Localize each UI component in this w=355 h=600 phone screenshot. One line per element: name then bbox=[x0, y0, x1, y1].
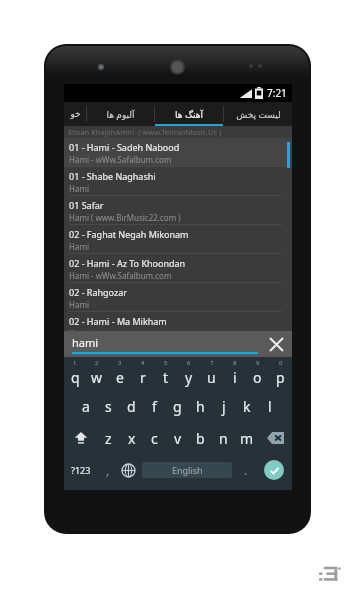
staticText: z bbox=[105, 429, 112, 448]
button[interactable]: f bbox=[143, 390, 166, 422]
button[interactable]: 5 bbox=[154, 359, 177, 390]
button[interactable]: 4 bbox=[131, 359, 154, 390]
button[interactable]: 2 bbox=[86, 359, 108, 390]
staticText: خو bbox=[70, 109, 81, 119]
staticText: r bbox=[140, 368, 146, 387]
button[interactable]: آلبوم ها bbox=[87, 102, 154, 126]
staticText: w bbox=[91, 368, 103, 387]
button[interactable]: , bbox=[97, 454, 118, 486]
staticText: 1 bbox=[73, 359, 77, 367]
staticText: 9 bbox=[256, 359, 260, 367]
button[interactable]: خو bbox=[64, 102, 86, 126]
staticText: i bbox=[233, 368, 237, 387]
staticText: g bbox=[173, 397, 182, 416]
staticText: Hami bbox=[69, 241, 89, 252]
button[interactable]: Clear search bbox=[266, 334, 286, 354]
button[interactable]: m bbox=[235, 422, 258, 454]
button[interactable]: 6 bbox=[177, 359, 200, 390]
staticText: h bbox=[196, 397, 205, 416]
staticText: آهنگ ها bbox=[175, 108, 203, 120]
staticText: o bbox=[253, 368, 262, 387]
staticText: Hami - wWw.Safalbum.com bbox=[69, 270, 172, 281]
button[interactable]: d bbox=[120, 390, 143, 422]
staticText: 02 - Hami - Ma Mikham bbox=[69, 315, 167, 327]
button[interactable]: 01 - Hami - Sadeh Nabood bbox=[64, 138, 292, 167]
button[interactable]: l bbox=[258, 390, 281, 422]
button[interactable]: Shift bbox=[64, 422, 97, 454]
staticText: 01 - Shabe Naghashi bbox=[69, 170, 156, 182]
button[interactable]: آهنگ ها bbox=[155, 102, 223, 126]
staticText: b bbox=[196, 429, 205, 448]
staticText: . bbox=[244, 462, 248, 478]
button[interactable]: English bbox=[142, 462, 232, 478]
button[interactable]: 9 bbox=[246, 359, 269, 390]
button[interactable]: 1 bbox=[64, 359, 86, 390]
button[interactable]: 8 bbox=[223, 359, 246, 390]
staticText: a bbox=[82, 397, 90, 416]
button[interactable]: 02 - Rahgozar bbox=[64, 283, 292, 312]
staticText: y bbox=[185, 368, 193, 387]
button[interactable]: Change language bbox=[118, 454, 139, 486]
button[interactable]: 02 - Hami - Ma Mikham bbox=[64, 312, 292, 331]
staticText: l bbox=[268, 397, 272, 416]
staticText: d bbox=[127, 397, 136, 416]
button[interactable]: h bbox=[189, 390, 212, 422]
staticText: 2 bbox=[95, 359, 99, 367]
button[interactable]: g bbox=[166, 390, 189, 422]
button[interactable]: . bbox=[235, 454, 256, 486]
staticText: 01 - Hami - Sadeh Nabood bbox=[69, 141, 180, 153]
button[interactable]: ?123 bbox=[64, 454, 97, 486]
staticText: u bbox=[207, 368, 216, 387]
button[interactable]: j bbox=[212, 390, 235, 422]
button[interactable]: Backspace bbox=[258, 422, 292, 454]
staticText: Hami - wWw.Safalbum.com bbox=[69, 154, 172, 165]
staticText: 02 - Rahgozar bbox=[69, 286, 127, 298]
staticText: k bbox=[243, 397, 251, 416]
staticText: Hami bbox=[69, 328, 89, 331]
button[interactable]: 01 - Shabe Naghashi bbox=[64, 167, 292, 196]
staticText: m bbox=[240, 429, 254, 448]
button[interactable]: k bbox=[235, 390, 258, 422]
button[interactable]: x bbox=[120, 422, 143, 454]
button[interactable]: 7 bbox=[200, 359, 223, 390]
button[interactable]: 02 - Faghat Negah Mikonam bbox=[64, 225, 292, 254]
button[interactable]: 02 - Hami - Az To Khoondan bbox=[64, 254, 292, 283]
button[interactable]: s bbox=[97, 390, 120, 422]
staticText: 5 bbox=[164, 359, 168, 367]
staticText: Hami bbox=[69, 183, 89, 194]
staticText: f bbox=[152, 397, 157, 416]
staticText: Hami bbox=[69, 299, 89, 310]
staticText: آلبوم ها bbox=[106, 108, 135, 120]
staticText: Ehsan KhajehAmiri ( www.TehranMusic.Us ) bbox=[68, 127, 222, 137]
button[interactable]: لیست پخش bbox=[224, 102, 292, 126]
staticText: 8 bbox=[233, 359, 237, 367]
button[interactable]: z bbox=[97, 422, 120, 454]
staticText: Hami ( www.BirMusic22.com ) bbox=[69, 212, 181, 223]
staticText: q bbox=[71, 368, 80, 387]
button[interactable]: v bbox=[166, 422, 189, 454]
staticText: t bbox=[163, 368, 169, 387]
button[interactable]: Done bbox=[256, 454, 292, 486]
staticText: 4 bbox=[141, 359, 145, 367]
staticText: 7 bbox=[210, 359, 214, 367]
staticText: 0 bbox=[279, 359, 283, 367]
staticText: p bbox=[276, 368, 285, 387]
button[interactable]: 0 bbox=[269, 359, 292, 390]
button[interactable]: n bbox=[212, 422, 235, 454]
button[interactable]: b bbox=[189, 422, 212, 454]
staticText: j bbox=[222, 397, 226, 416]
staticText: x bbox=[128, 429, 136, 448]
staticText: n bbox=[219, 429, 228, 448]
staticText: English bbox=[172, 464, 203, 476]
staticText: hami bbox=[72, 335, 99, 350]
staticText: , bbox=[106, 462, 110, 478]
staticText: ?123 bbox=[71, 464, 91, 476]
staticText: 01 Safar bbox=[69, 199, 104, 211]
button[interactable]: a bbox=[74, 390, 97, 422]
button[interactable]: 01 Safar bbox=[64, 196, 292, 225]
staticText: لیست پخش bbox=[236, 108, 281, 120]
staticText: 6 bbox=[187, 359, 191, 367]
button[interactable]: 3 bbox=[108, 359, 131, 390]
button[interactable]: c bbox=[143, 422, 166, 454]
staticText: 02 - Faghat Negah Mikonam bbox=[69, 228, 189, 240]
